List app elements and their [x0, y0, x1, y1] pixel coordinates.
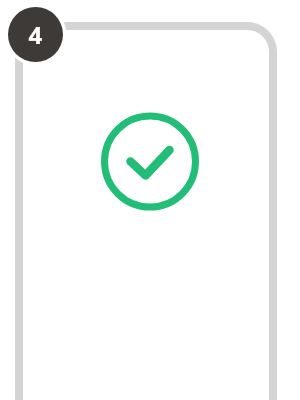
button[interactable]: Completed card: [0, 0, 300, 400]
